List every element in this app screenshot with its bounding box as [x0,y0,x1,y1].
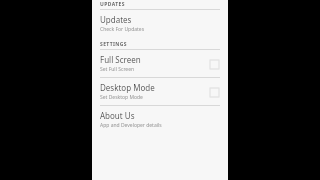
staticText: SETTINGS [100,41,128,48]
staticText: Updates [100,14,132,25]
staticText: Desktop Mode [100,82,155,93]
button[interactable]: About Us [92,106,228,133]
button[interactable]: Full Screen [92,50,228,77]
staticText: About Us [100,110,135,121]
button[interactable]: Updates [92,10,228,37]
staticText: App and Developer details [100,122,162,129]
staticText: Set Full Screen [100,66,135,73]
staticText: UPDATES [100,1,125,8]
staticText: Set Desktop Mode [100,94,143,101]
staticText: Full Screen [100,54,141,65]
button[interactable]: Desktop Mode [92,78,228,105]
staticText: Check For Updates [100,26,145,33]
